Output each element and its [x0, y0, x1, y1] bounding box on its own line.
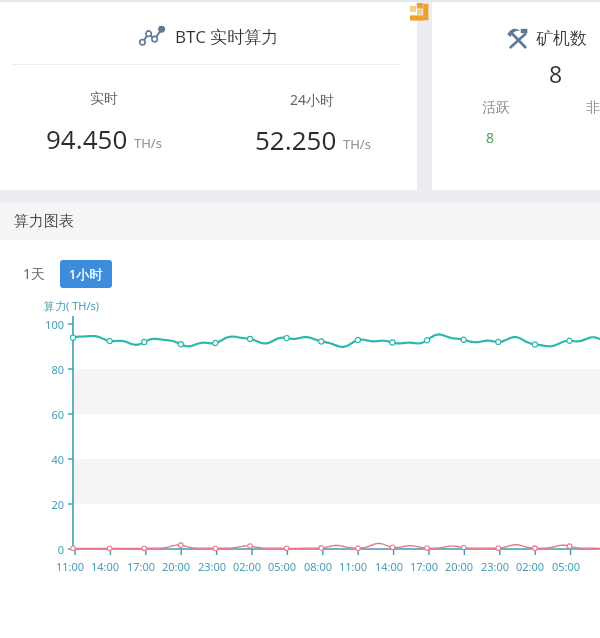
other: App logo — [410, 3, 430, 23]
staticText: 20:00 — [445, 559, 474, 574]
staticText: 1小时 — [69, 265, 103, 283]
staticText: BTC 实时算力 — [175, 25, 279, 48]
staticText: 94.450 — [46, 121, 128, 156]
staticText: TH/s — [343, 135, 371, 153]
staticText: 24小时 — [290, 90, 335, 109]
staticText: 11:00 — [56, 559, 85, 574]
staticText: 17:00 — [410, 559, 439, 574]
staticText: 8 — [549, 58, 563, 89]
staticText: 23:00 — [198, 559, 227, 574]
staticText: 20:00 — [162, 559, 191, 574]
staticText: 05:00 — [268, 559, 297, 574]
staticText: 80 — [51, 362, 64, 377]
button[interactable]: 1天 — [18, 259, 51, 288]
staticText: 52.250 — [255, 122, 337, 157]
staticText: 1天 — [23, 264, 46, 283]
staticText: 实时 — [90, 90, 118, 108]
staticText: 17:00 — [127, 559, 156, 574]
button[interactable]: 1小时 — [60, 260, 112, 288]
staticText: 非 — [586, 99, 600, 117]
staticText: 11:00 — [339, 559, 368, 574]
staticText: 0 — [57, 542, 64, 557]
staticText: 14:00 — [375, 559, 404, 574]
staticText: 05:00 — [552, 559, 581, 574]
staticText: TH/s — [134, 134, 162, 152]
staticText: 矿机数 — [536, 28, 587, 49]
staticText: 23:00 — [481, 559, 510, 574]
staticText: 40 — [51, 452, 64, 467]
staticText: 02:00 — [233, 559, 262, 574]
staticText: 8 — [486, 128, 495, 147]
button[interactable]: BTC 实时算力 — [0, 2, 417, 190]
staticText: 20 — [51, 497, 64, 512]
staticText: 02:00 — [516, 559, 545, 574]
staticText: 08:00 — [304, 559, 333, 574]
staticText: 活跃 — [482, 99, 510, 117]
staticText: 60 — [51, 407, 64, 422]
staticText: 算力图表 — [14, 212, 74, 231]
staticText: 100 — [45, 317, 64, 332]
button[interactable]: 矿机数 — [432, 2, 600, 190]
staticText: 14:00 — [91, 559, 120, 574]
staticText: 算力( TH/s) — [44, 298, 100, 313]
